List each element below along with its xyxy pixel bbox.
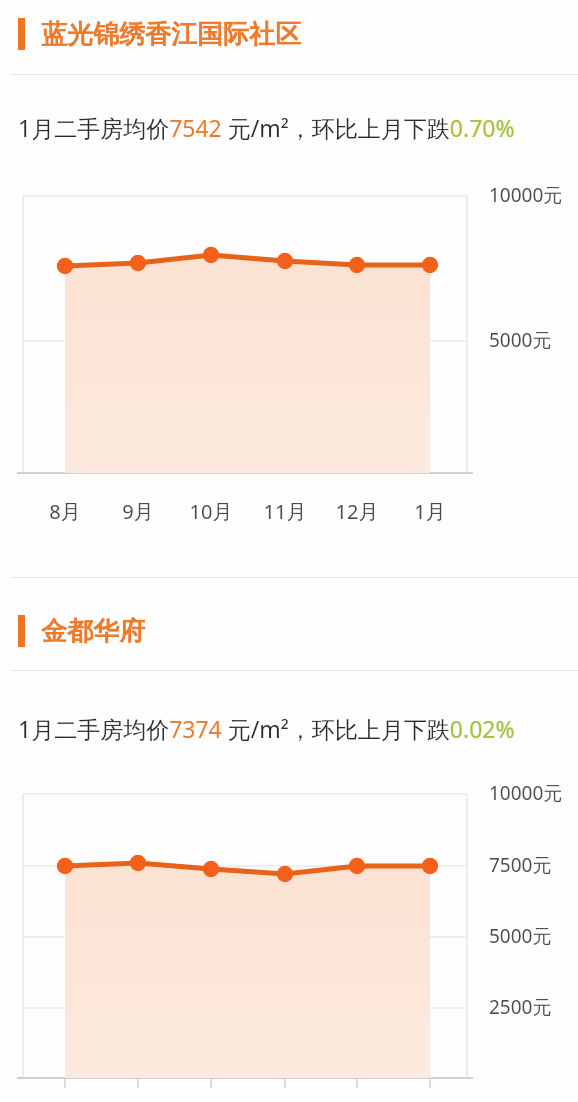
staticText: 9月 — [122, 498, 154, 525]
staticText: 10000元 — [489, 182, 563, 208]
staticText: 12月 — [335, 498, 379, 525]
staticText: 7500元 — [489, 852, 552, 878]
button[interactable]: 金都华府价格走势图 — [0, 778, 578, 1102]
staticText: 1月二手房均价7542 元/m²，环比上月下跌0.70% — [18, 112, 515, 143]
staticText: 金都华府 — [41, 615, 145, 648]
staticText: 10月 — [189, 498, 233, 525]
button[interactable]: 蓝光锦绣香江国际社区价格走势图 — [0, 180, 578, 530]
staticText: 5000元 — [489, 923, 552, 949]
staticText: 1月 — [414, 498, 446, 525]
staticText: 蓝光锦绣香江国际社区 — [41, 18, 301, 51]
staticText: 10000元 — [489, 780, 563, 806]
staticText: 1月二手房均价7374 元/m²，环比上月下跌0.02% — [18, 713, 515, 744]
staticText: 5000元 — [489, 327, 552, 353]
staticText: 8月 — [49, 498, 81, 525]
button[interactable]: 金都华府 — [0, 613, 578, 649]
button[interactable]: 蓝光锦绣香江国际社区 — [0, 16, 578, 52]
staticText: 2500元 — [489, 994, 552, 1020]
staticText: 11月 — [263, 498, 307, 525]
